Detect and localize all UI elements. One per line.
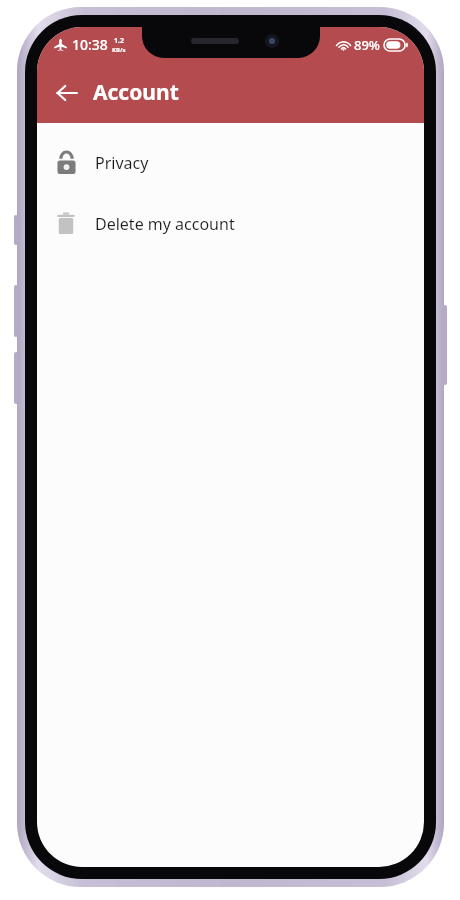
- staticText: Delete my account: [95, 213, 235, 235]
- staticText: Privacy: [95, 152, 149, 174]
- button[interactable]: Privacy: [37, 132, 424, 193]
- staticText: 1.2: [114, 36, 124, 46]
- staticText: 89%: [354, 36, 380, 54]
- staticText: KB/s: [112, 46, 126, 54]
- button[interactable]: Delete my account: [37, 193, 424, 254]
- staticText: 10:38: [72, 35, 108, 54]
- staticText: Account: [93, 78, 179, 107]
- button[interactable]: Back: [43, 69, 91, 117]
